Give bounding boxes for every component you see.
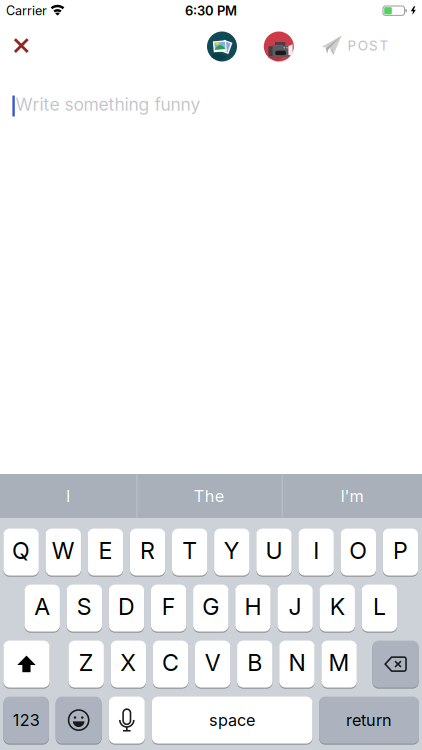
button[interactable]: space — [152, 696, 312, 744]
button[interactable]: I — [0, 474, 136, 518]
button[interactable]: Add photo — [207, 31, 237, 61]
button[interactable]: M — [321, 640, 357, 688]
button[interactable]: Z — [68, 640, 104, 688]
button[interactable]: N — [279, 640, 315, 688]
button[interactable]: J — [277, 584, 313, 632]
staticText: F — [162, 593, 176, 621]
staticText: A — [34, 593, 50, 621]
staticText: I — [66, 486, 70, 506]
button[interactable]: U — [256, 528, 292, 576]
staticText: 6:30 PM — [185, 3, 237, 19]
button[interactable]: T — [172, 528, 207, 576]
staticText: I'm — [340, 486, 363, 506]
staticText: Z — [79, 649, 94, 677]
button[interactable]: E — [88, 528, 123, 576]
button[interactable]: Shift — [3, 640, 50, 688]
staticText: P — [393, 537, 408, 565]
staticText: 123 — [13, 710, 40, 730]
staticText: POST — [347, 37, 388, 54]
button[interactable]: Emoji — [56, 696, 102, 744]
button[interactable]: Dictate — [109, 696, 145, 744]
button[interactable]: K — [320, 584, 355, 632]
button[interactable]: G — [193, 584, 228, 632]
staticText: C — [162, 649, 179, 677]
button[interactable]: S — [67, 584, 102, 632]
staticText: D — [118, 593, 135, 621]
staticText: I — [313, 537, 319, 565]
button[interactable]: W — [45, 528, 81, 576]
button[interactable]: I — [298, 528, 334, 576]
staticText: Carrier — [6, 3, 47, 18]
staticText: The — [194, 486, 225, 506]
staticText: E — [98, 537, 112, 565]
button[interactable]: Add video — [264, 31, 294, 61]
staticText: N — [288, 649, 305, 677]
button[interactable]: Post — [321, 33, 388, 57]
staticText: space — [209, 710, 255, 730]
button[interactable]: I'm — [282, 474, 422, 518]
staticText: R — [140, 537, 155, 565]
button[interactable]: L — [362, 584, 397, 632]
staticText: K — [330, 593, 345, 621]
staticText: O — [349, 537, 367, 565]
staticText: T — [182, 537, 197, 565]
button[interactable]: R — [130, 528, 165, 576]
staticText: Q — [12, 537, 30, 565]
staticText: G — [202, 593, 219, 621]
staticText: M — [329, 649, 350, 677]
button[interactable]: P — [383, 528, 418, 576]
staticText: return — [346, 710, 392, 730]
button[interactable]: Delete — [372, 640, 419, 688]
staticText: W — [52, 537, 75, 565]
staticText: X — [120, 649, 136, 677]
button[interactable]: X — [111, 640, 146, 688]
button[interactable]: A — [24, 584, 60, 632]
staticText: B — [247, 649, 262, 677]
staticText: J — [289, 593, 302, 621]
staticText: H — [244, 593, 261, 621]
button[interactable]: F — [151, 584, 186, 632]
button[interactable]: Close — [8, 32, 35, 59]
button[interactable]: C — [153, 640, 188, 688]
button[interactable]: return — [319, 696, 419, 744]
button[interactable]: The — [137, 474, 282, 518]
button[interactable]: Y — [214, 528, 250, 576]
button[interactable]: H — [235, 584, 271, 632]
button[interactable]: B — [237, 640, 272, 688]
button[interactable]: 123 — [3, 696, 49, 744]
staticText: L — [373, 593, 386, 621]
button[interactable]: V — [195, 640, 230, 688]
button[interactable]: D — [109, 584, 144, 632]
staticText: Write something funny — [16, 94, 201, 115]
staticText: S — [77, 593, 92, 621]
button[interactable]: Q — [3, 528, 39, 576]
staticText: Y — [224, 537, 240, 565]
staticText: V — [205, 649, 221, 677]
staticText: U — [265, 537, 282, 565]
button[interactable]: O — [341, 528, 376, 576]
